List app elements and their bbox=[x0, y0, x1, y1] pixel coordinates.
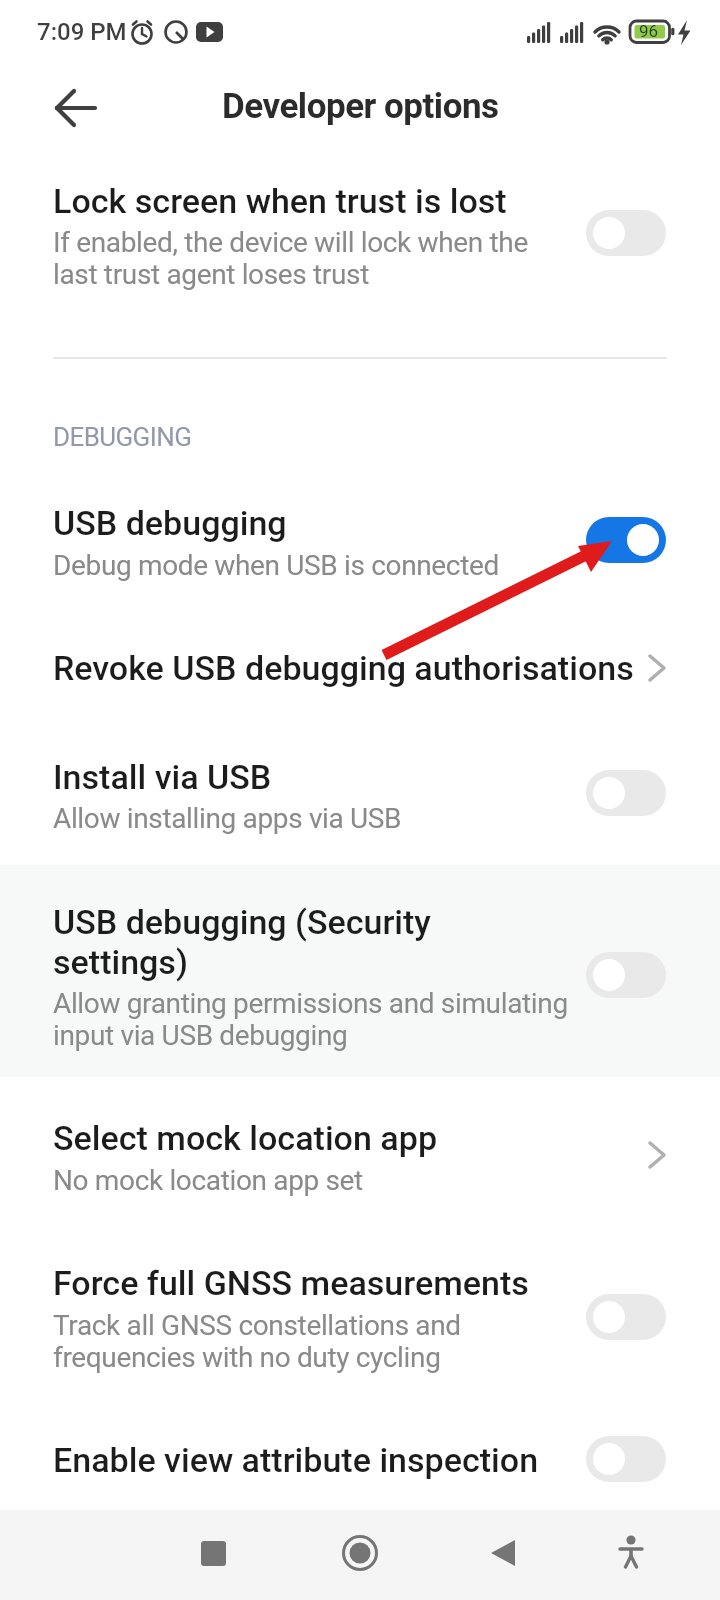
staticText: Install via USB bbox=[53, 757, 272, 797]
staticText: frequencies with no duty cycling bbox=[53, 1341, 441, 1374]
button[interactable] bbox=[0, 630, 720, 710]
button[interactable] bbox=[0, 740, 720, 850]
staticText: DEBUGGING bbox=[53, 422, 192, 452]
button[interactable] bbox=[588, 1520, 674, 1590]
button[interactable] bbox=[0, 880, 720, 1070]
staticText: Track all GNSS constellations and bbox=[53, 1309, 461, 1342]
staticText: If enabled, the device will lock when th… bbox=[53, 226, 528, 259]
staticText: Enable view attribute inspection bbox=[53, 1440, 539, 1480]
staticText: Force full GNSS measurements bbox=[53, 1263, 529, 1303]
staticText: Developer options bbox=[222, 86, 499, 127]
button[interactable] bbox=[586, 952, 666, 998]
button[interactable] bbox=[586, 210, 666, 256]
button[interactable] bbox=[0, 1420, 720, 1500]
button[interactable] bbox=[462, 1520, 548, 1590]
staticText: USB debugging bbox=[53, 503, 287, 543]
button[interactable] bbox=[0, 1245, 720, 1385]
button[interactable] bbox=[586, 517, 666, 563]
staticText: Revoke USB debugging authorisations bbox=[53, 648, 634, 688]
staticText: Select mock location app bbox=[53, 1118, 438, 1158]
staticText: 7:09 PM bbox=[37, 18, 127, 46]
button[interactable] bbox=[586, 1294, 666, 1340]
staticText: Allow granting permissions and simulatin… bbox=[53, 987, 568, 1020]
button[interactable] bbox=[170, 1520, 256, 1590]
staticText: Lock screen when trust is lost bbox=[53, 181, 507, 221]
button[interactable] bbox=[317, 1520, 403, 1590]
staticText: USB debugging (Security bbox=[53, 902, 431, 942]
button[interactable] bbox=[586, 1436, 666, 1482]
staticText: Allow installing apps via USB bbox=[53, 802, 402, 835]
button[interactable] bbox=[0, 1100, 720, 1210]
button[interactable] bbox=[586, 770, 666, 816]
button[interactable] bbox=[0, 165, 720, 310]
staticText: 96 bbox=[639, 21, 659, 41]
staticText: last trust agent loses trust bbox=[53, 258, 369, 291]
button[interactable] bbox=[0, 488, 720, 598]
staticText: No mock location app set bbox=[53, 1164, 363, 1197]
button[interactable] bbox=[40, 88, 100, 128]
staticText: input via USB debugging bbox=[53, 1019, 348, 1052]
staticText: Debug mode when USB is connected bbox=[53, 549, 499, 582]
staticText: settings) bbox=[53, 942, 188, 982]
